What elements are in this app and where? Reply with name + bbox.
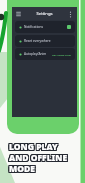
staticText: LONG PLAY (9, 140, 58, 150)
staticText: AND OFFLINE (10, 153, 69, 163)
staticText: MODE (8, 164, 34, 174)
staticText: LONG PLAY (10, 140, 59, 150)
staticText: LONG PLAY (8, 141, 57, 151)
staticText: LONG PLAY (9, 140, 58, 150)
staticText: MODE (10, 162, 36, 172)
staticText: MODE (10, 164, 36, 174)
staticText: MODE (8, 163, 34, 173)
staticText: Reset everywhere (24, 39, 51, 43)
staticText: LONG PLAY (8, 140, 57, 150)
staticText: AND OFFLINE (10, 153, 69, 163)
staticText: AND OFFLINE (9, 153, 68, 163)
staticText: MODE (10, 164, 36, 174)
staticText: AND OFFLINE (9, 151, 68, 161)
staticText: MODE (8, 164, 34, 174)
staticText: MODE (8, 162, 34, 172)
staticText: Notifications (24, 25, 43, 29)
staticText: LONG PLAY (10, 142, 59, 152)
staticText: LONG PLAY (10, 140, 59, 150)
staticText: AND OFFLINE (10, 153, 69, 163)
staticText: LONG PLAY (9, 142, 58, 152)
button[interactable]: More options (67, 10, 74, 18)
staticText: AND OFFLINE (10, 151, 69, 161)
staticText: LONG PLAY (10, 140, 59, 150)
staticText: LONG PLAY (8, 140, 57, 150)
staticText: AND OFFLINE (10, 152, 69, 162)
staticText: LONG PLAY (10, 141, 59, 151)
button[interactable]: Autoplay/Anim (15, 48, 75, 60)
staticText: AND OFFLINE (8, 152, 67, 162)
staticText: LONG PLAY (10, 141, 59, 151)
staticText: MODE (8, 163, 34, 173)
staticText: MODE (10, 163, 36, 173)
staticText: MODE (10, 162, 36, 172)
staticText: GET MORE TIME (52, 53, 71, 56)
staticText: Autoplay/Anim (24, 52, 47, 56)
staticText: MODE (10, 162, 36, 172)
staticText: MODE (9, 163, 35, 173)
staticText: MODE (9, 164, 35, 174)
staticText: AND OFFLINE (8, 153, 67, 163)
staticText: LONG PLAY (10, 142, 59, 152)
button[interactable]: Menu (15, 10, 22, 17)
staticText: MODE (9, 164, 35, 174)
staticText: LONG PLAY (9, 142, 58, 152)
staticText: LONG PLAY (8, 142, 57, 152)
staticText: AND OFFLINE (8, 151, 67, 161)
staticText: LONG PLAY (9, 141, 58, 151)
staticText: LONG PLAY (8, 142, 57, 152)
button[interactable]: Notifications (15, 21, 75, 33)
staticText: AND OFFLINE (10, 151, 69, 161)
staticText: AND OFFLINE (9, 152, 68, 162)
staticText: MODE (8, 162, 34, 172)
button[interactable]: Reset everywhere (15, 35, 75, 47)
staticText: MODE (10, 163, 36, 173)
staticText: LONG PLAY (8, 141, 57, 151)
staticText: AND OFFLINE (8, 153, 67, 163)
staticText: MODE (9, 162, 35, 172)
staticText: LONG PLAY (8, 140, 57, 150)
staticText: AND OFFLINE (9, 151, 68, 161)
staticText: AND OFFLINE (8, 153, 67, 163)
staticText: AND OFFLINE (8, 151, 67, 161)
staticText: Settings (22, 11, 67, 17)
staticText: LONG PLAY (8, 142, 57, 152)
staticText: MODE (10, 164, 36, 174)
staticText: AND OFFLINE (8, 151, 67, 161)
staticText: AND OFFLINE (9, 153, 68, 163)
staticText: MODE (8, 164, 34, 174)
staticText: MODE (9, 162, 35, 172)
staticText: LONG PLAY (10, 142, 59, 152)
staticText: MODE (8, 162, 34, 172)
staticText: AND OFFLINE (10, 151, 69, 161)
staticText: AND OFFLINE (10, 152, 69, 162)
staticText: AND OFFLINE (8, 152, 67, 162)
